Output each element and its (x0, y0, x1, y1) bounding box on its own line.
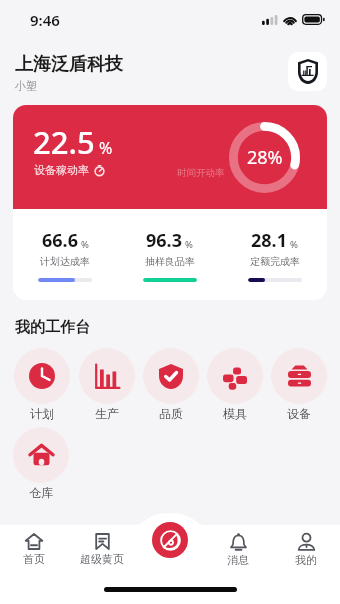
staticText: 上海泛盾科技 (15, 53, 123, 76)
staticText: 设备稼动率 (34, 163, 89, 177)
staticText: 品质 (159, 406, 183, 421)
staticText: 我的工作台 (15, 318, 90, 337)
button[interactable]: Discover (152, 522, 188, 558)
button[interactable]: 仓库 (9, 427, 73, 500)
staticText: 仓库 (29, 485, 53, 500)
staticText: 22.5 (33, 121, 95, 163)
staticText: 抽样良品率 (145, 255, 195, 268)
button[interactable]: 66.6 (13, 209, 117, 282)
staticText: 生产 (95, 406, 119, 421)
button[interactable]: Company logo (288, 52, 327, 91)
staticText: % (290, 238, 298, 251)
staticText: 66.6 (42, 228, 78, 253)
staticText: 28% (247, 145, 283, 170)
staticText: 设备 (287, 406, 311, 421)
staticText: 模具 (223, 406, 247, 421)
button[interactable]: 我的 (272, 533, 340, 567)
staticText: 我的 (295, 553, 317, 567)
staticText: 首页 (23, 552, 45, 566)
button[interactable]: 超级黄页 (68, 533, 136, 566)
staticText: 计划达成率 (40, 255, 90, 268)
staticText: 消息 (227, 553, 249, 567)
staticText: % (185, 238, 193, 251)
button[interactable]: 设备 (267, 348, 331, 421)
button[interactable]: 模具 (203, 348, 267, 421)
staticText: 96.3 (146, 228, 182, 253)
staticText: 28.1 (251, 228, 287, 253)
button[interactable]: 品质 (139, 348, 203, 421)
button[interactable]: 96.3 (117, 209, 222, 282)
staticText: 计划 (30, 406, 54, 421)
button[interactable]: 计划 (9, 348, 74, 421)
staticText: 9:46 (30, 10, 60, 30)
staticText: 小塑 (15, 79, 37, 93)
button[interactable]: 消息 (204, 533, 272, 567)
staticText: 定额完成率 (250, 255, 300, 268)
staticText: 超级黄页 (80, 552, 124, 566)
staticText: 时间开动率 (177, 167, 225, 179)
staticText: % (99, 137, 113, 159)
button[interactable]: 首页 (0, 533, 68, 566)
button[interactable]: 28.1 (222, 209, 327, 282)
staticText: % (81, 238, 89, 251)
button[interactable]: 生产 (74, 348, 139, 421)
